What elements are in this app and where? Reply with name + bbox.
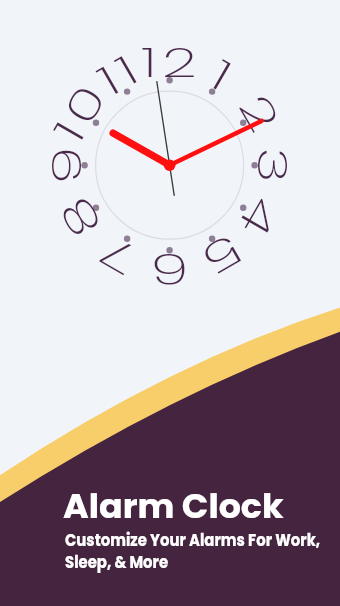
staticText: Alarm Clock [63,482,284,530]
staticText: Customize Your Alarms For Work, Sleep, &… [65,528,321,574]
